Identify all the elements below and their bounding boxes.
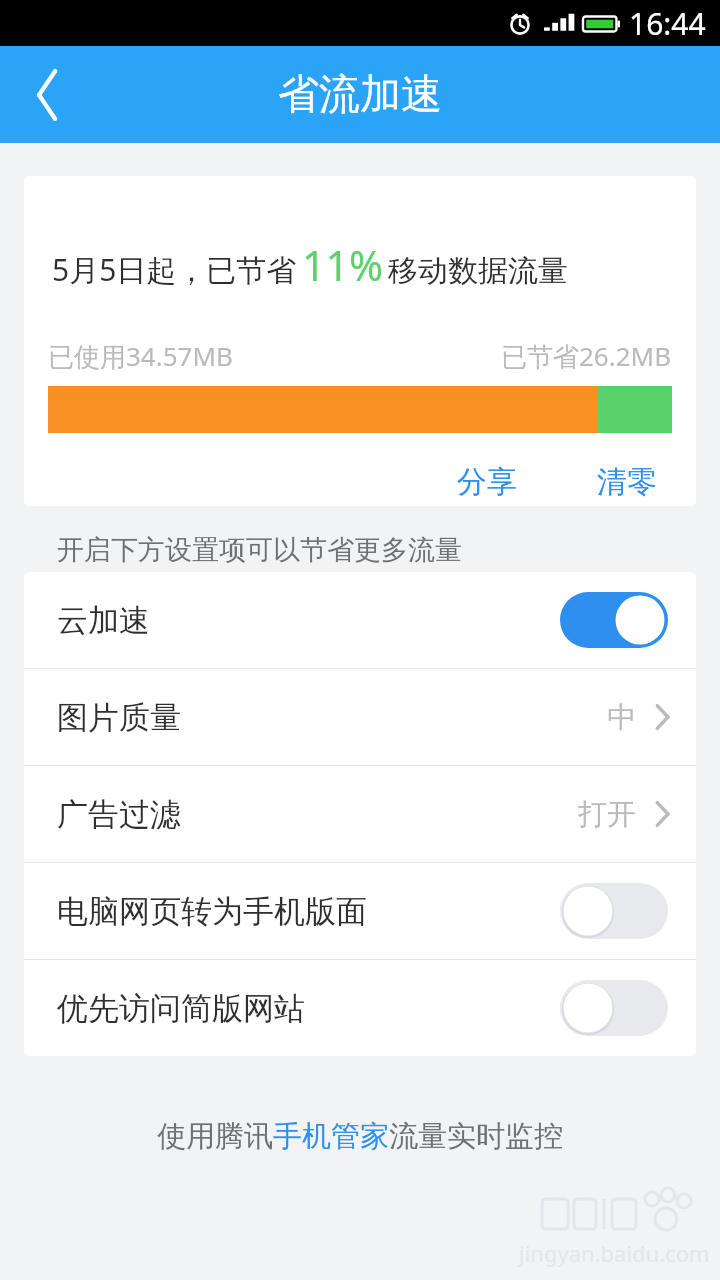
button[interactable]: 云加速 xyxy=(24,572,696,668)
staticText: 手机管家 xyxy=(273,1118,389,1155)
staticText: 打开 xyxy=(578,796,636,833)
staticText: 广告过滤 xyxy=(57,795,181,834)
button[interactable]: 电脑网页转为手机版面 xyxy=(24,863,696,959)
button[interactable]: 清零 xyxy=(575,457,679,506)
staticText: 流量实时监控 xyxy=(389,1118,563,1155)
staticText: 图片质量 xyxy=(57,698,181,737)
staticText: 16:44 xyxy=(629,3,706,44)
staticText: 移动数据流量 xyxy=(388,252,568,290)
button[interactable]: 图片质量 xyxy=(24,669,696,765)
staticText: 使用腾讯 xyxy=(157,1118,273,1155)
staticText: 11% xyxy=(302,237,383,293)
staticText: 中 xyxy=(607,699,636,736)
staticText: jingyan.baidu.com xyxy=(519,1238,710,1268)
staticText: 云加速 xyxy=(57,601,150,640)
staticText: 已节省26.2MB xyxy=(501,338,672,374)
button[interactable]: Back xyxy=(0,46,96,143)
staticText: 5月5日起，已节省 xyxy=(52,249,297,290)
button[interactable]: 手机管家 xyxy=(273,1118,389,1155)
staticText: 电脑网页转为手机版面 xyxy=(57,892,367,931)
staticText: 清零 xyxy=(597,463,657,501)
staticText: 省流加速 xyxy=(278,69,442,121)
staticText: 分享 xyxy=(457,463,517,501)
button[interactable]: 优先访问简版网站 xyxy=(24,960,696,1056)
staticText: 开启下方设置项可以节省更多流量 xyxy=(57,533,462,567)
staticText: 已使用34.57MB xyxy=(48,338,233,374)
button[interactable]: 分享 xyxy=(435,457,539,506)
button[interactable]: 广告过滤 xyxy=(24,766,696,862)
staticText: 优先访问简版网站 xyxy=(57,989,305,1028)
